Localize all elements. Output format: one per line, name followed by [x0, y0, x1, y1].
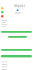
- staticText: Report: [14, 2, 25, 8]
